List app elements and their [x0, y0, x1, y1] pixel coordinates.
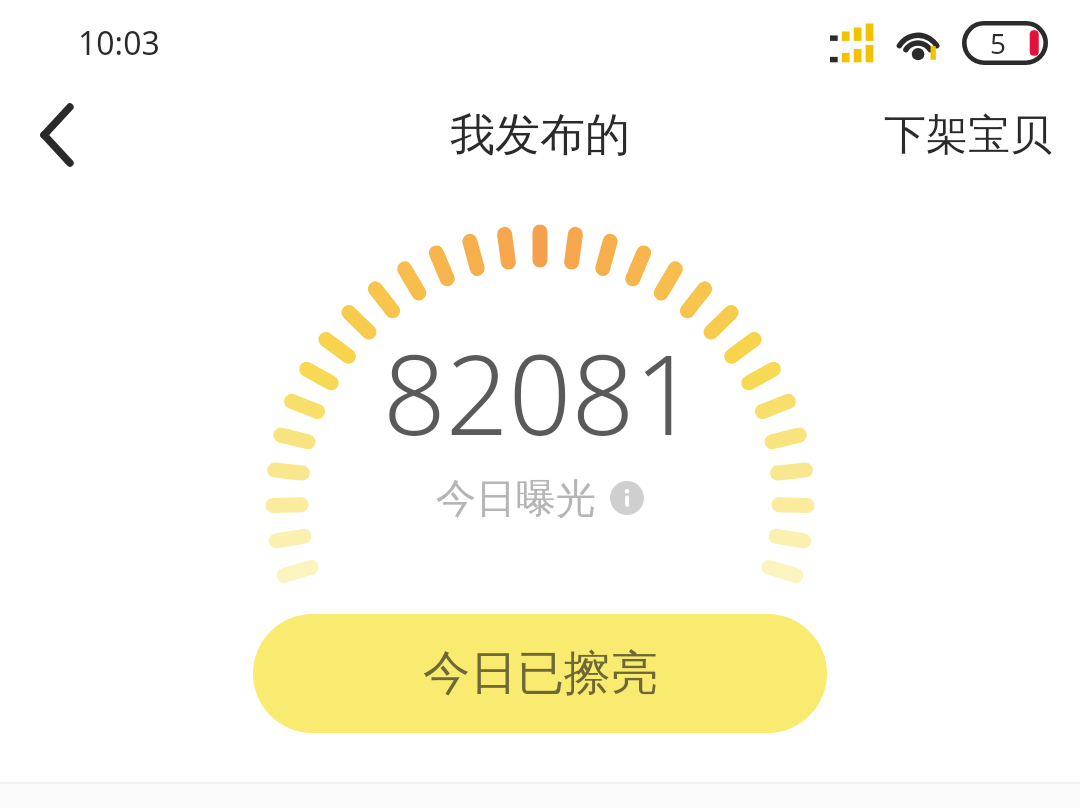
staticText: 今日曝光 [436, 473, 596, 523]
staticText: 我发布的 [450, 107, 630, 164]
staticText: 今日已擦亮 [423, 644, 658, 703]
button[interactable]: Back [22, 100, 92, 170]
button[interactable]: 今日已擦亮 [253, 614, 827, 733]
button[interactable]: 下架宝贝 [856, 95, 1080, 176]
staticText: 5 [990, 24, 1007, 62]
staticText: 10:03 [78, 21, 160, 65]
staticText: 下架宝贝 [884, 109, 1052, 162]
button[interactable]: Info [610, 481, 644, 515]
staticText: 82081 [383, 317, 698, 467]
